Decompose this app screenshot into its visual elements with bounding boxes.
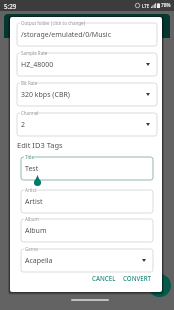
- staticText: 320 kbps (CBR): [21, 90, 70, 100]
- button[interactable]: Album: [21, 219, 153, 242]
- staticText: Artist: [25, 187, 37, 193]
- staticText: Test: [25, 164, 39, 174]
- staticText: CANCEL: [92, 274, 116, 282]
- button[interactable]: Output folder (click to change): [17, 23, 157, 46]
- staticText: CONVERT: [123, 274, 152, 282]
- button[interactable]: Channel: [17, 113, 157, 136]
- button[interactable]: Title: [21, 157, 153, 180]
- staticText: HZ_48000: [21, 60, 54, 70]
- staticText: Title: [25, 154, 34, 160]
- button[interactable]: Sample Rate: [17, 53, 157, 76]
- staticText: Edit ID3 Tags: [17, 140, 63, 150]
- button[interactable]: Bit Rate: [17, 83, 157, 106]
- button[interactable]: CANCEL: [89, 272, 119, 284]
- staticText: 78%: [161, 2, 171, 9]
- button[interactable]: Artist: [21, 190, 153, 213]
- staticText: Output folder (click to change): [21, 20, 86, 26]
- button[interactable]: Convert: [148, 274, 171, 297]
- staticText: Bit Rate: [21, 80, 38, 86]
- staticText: Genre: [25, 246, 38, 252]
- staticText: Sample Rate: [21, 50, 48, 56]
- staticText: Artist: [25, 197, 43, 207]
- staticText: Channel: [21, 110, 39, 116]
- staticText: /storage/emulated/0/Music: [21, 30, 111, 40]
- button[interactable]: Genre: [21, 249, 153, 272]
- staticText: 5:29: [4, 2, 17, 10]
- staticText: Album: [25, 226, 47, 236]
- staticText: Album: [25, 216, 39, 222]
- staticText: LTE: [142, 3, 150, 9]
- staticText: 2: [21, 120, 26, 130]
- button[interactable]: CONVERT: [120, 272, 155, 284]
- staticText: Acapella: [25, 256, 53, 266]
